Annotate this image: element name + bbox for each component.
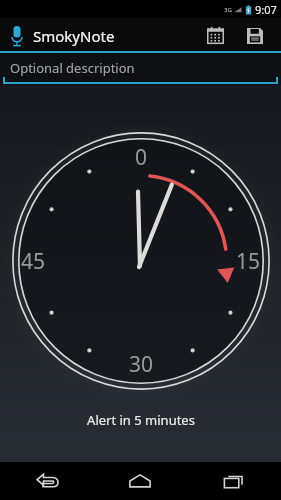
- staticText: 30: [129, 350, 154, 379]
- button[interactable]: SmokyNote: [9, 25, 115, 47]
- button[interactable]: Recents: [187, 462, 281, 500]
- button[interactable]: Back: [0, 462, 93, 500]
- staticText: 9:07: [255, 2, 277, 17]
- staticText: 0: [135, 143, 148, 172]
- button[interactable]: Schedule: [195, 18, 235, 53]
- button[interactable]: Home: [93, 462, 187, 500]
- staticText: 45: [21, 247, 46, 276]
- button[interactable]: Save: [235, 18, 275, 53]
- staticText: 3G: [224, 6, 232, 14]
- staticText: Alert in 5 minutes: [87, 411, 195, 429]
- staticText: 15: [236, 247, 261, 276]
- staticText: Optional description: [10, 59, 135, 77]
- staticText: SmokyNote: [33, 26, 115, 46]
- button[interactable]: Timer dial: [7, 127, 275, 395]
- button[interactable]: Optional description: [0, 53, 281, 85]
